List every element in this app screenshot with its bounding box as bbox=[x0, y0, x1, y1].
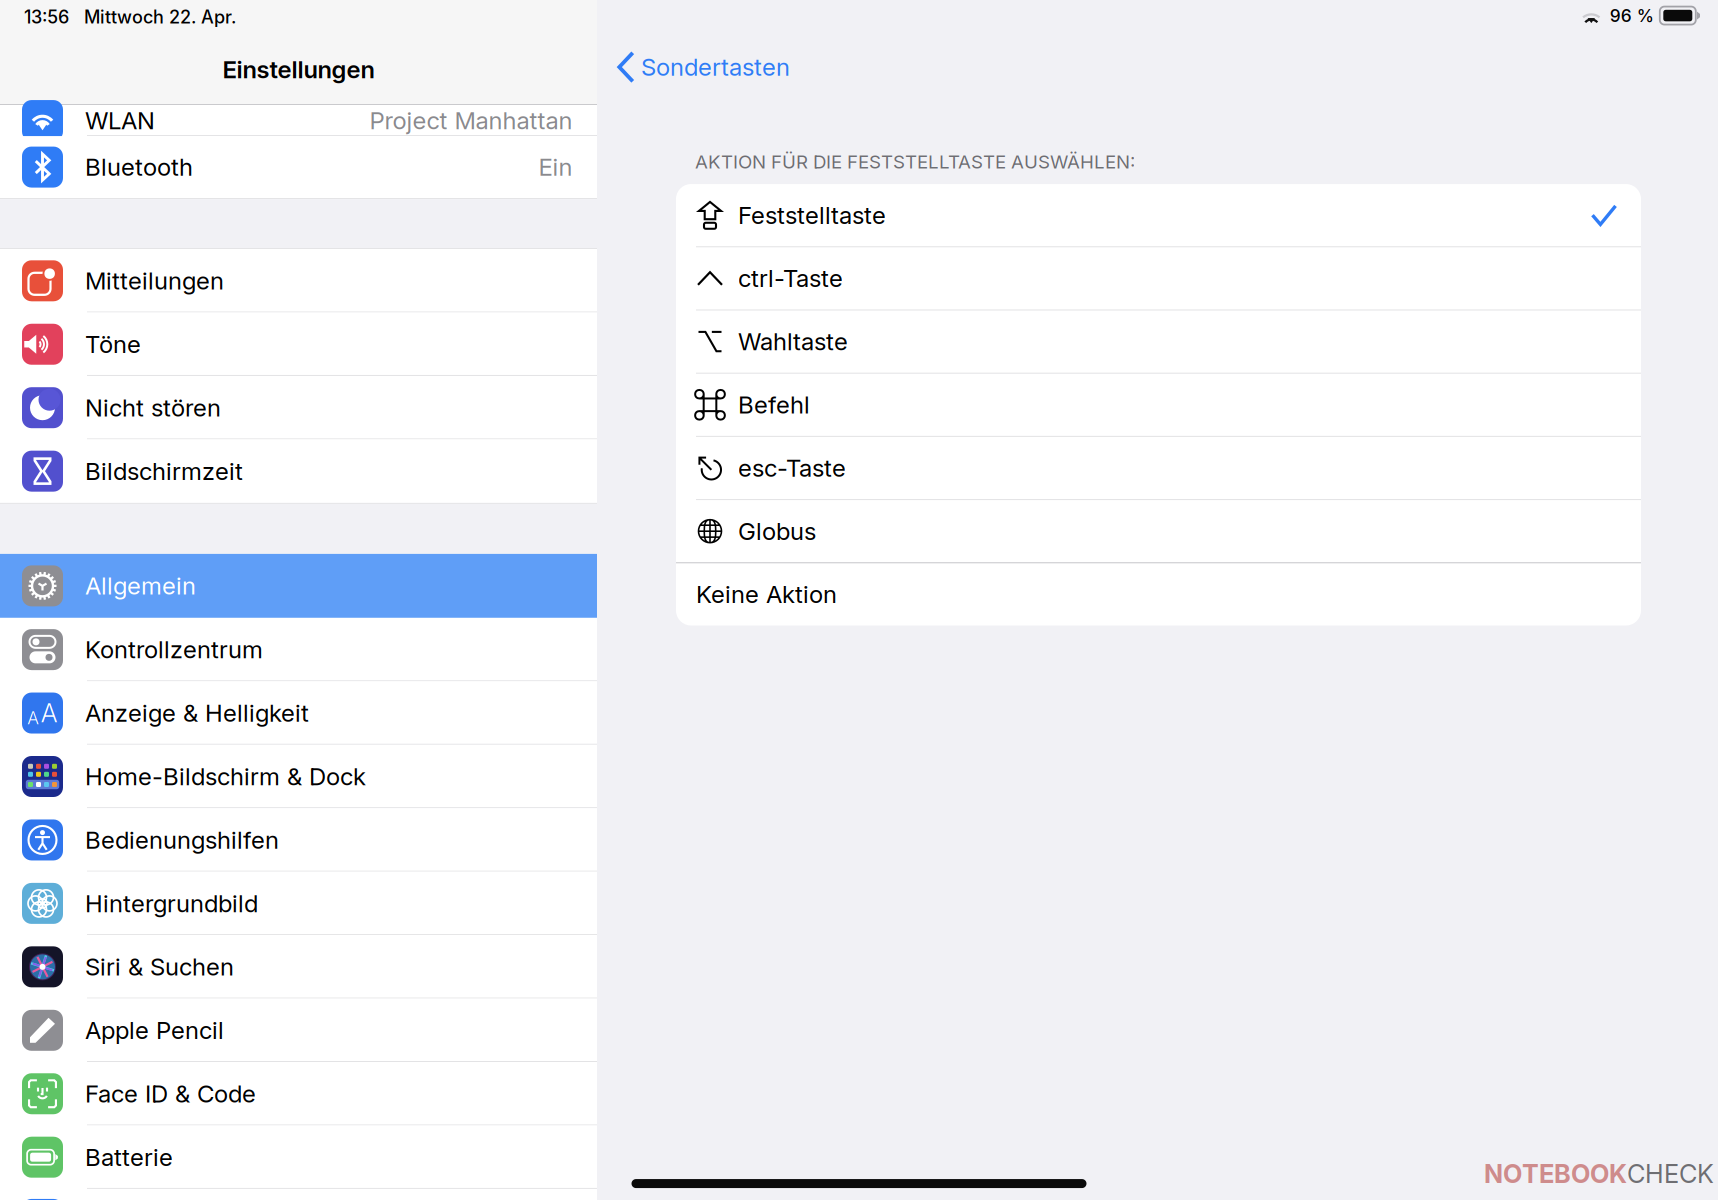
button[interactable]: Siri & Suchen bbox=[0, 935, 597, 999]
staticText: AKTION FÜR DIE FESTSTELLTASTE AUSWÄHLEN: bbox=[695, 150, 1135, 173]
staticText: Hintergrundbild bbox=[85, 889, 258, 918]
button[interactable]: Kontrollzentrum bbox=[0, 618, 597, 681]
staticText: Befehl bbox=[738, 390, 810, 419]
staticText: Ein bbox=[538, 153, 572, 182]
staticText: Kontrollzentrum bbox=[85, 635, 263, 664]
button[interactable]: Allgemein bbox=[0, 554, 597, 618]
staticText: Mittwoch 22. Apr. bbox=[84, 6, 236, 28]
staticText: Sondertasten bbox=[641, 53, 790, 82]
button[interactable]: Nicht stören bbox=[0, 376, 597, 439]
staticText: Bedienungshilfen bbox=[85, 825, 279, 854]
button[interactable]: WLAN bbox=[0, 105, 597, 136]
staticText: esc-Taste bbox=[738, 453, 846, 482]
button[interactable]: Hintergrundbild bbox=[0, 872, 597, 935]
staticText: NOTEBOOK bbox=[1484, 1158, 1627, 1189]
staticText: Siri & Suchen bbox=[85, 952, 234, 981]
staticText: Allgemein bbox=[85, 571, 196, 600]
staticText: Keine Aktion bbox=[696, 580, 837, 609]
staticText: WLAN bbox=[85, 106, 155, 135]
staticText: Batterie bbox=[85, 1143, 173, 1172]
staticText: 96 % bbox=[1610, 5, 1654, 26]
button[interactable]: Wahltaste bbox=[676, 310, 1641, 373]
button[interactable]: Bedienungshilfen bbox=[0, 808, 597, 872]
staticText: A bbox=[41, 698, 58, 728]
staticText: 13:56 bbox=[24, 6, 69, 28]
staticText: Face ID & Code bbox=[85, 1079, 256, 1108]
staticText: Globus bbox=[738, 517, 816, 546]
button[interactable]: Mitteilungen bbox=[0, 249, 597, 313]
staticText: A bbox=[27, 707, 39, 728]
button[interactable]: Apple Pencil bbox=[0, 999, 597, 1062]
button[interactable]: Batterie bbox=[0, 1125, 597, 1189]
staticText: Feststelltaste bbox=[738, 201, 886, 230]
staticText: Apple Pencil bbox=[85, 1016, 224, 1045]
staticText: Mitteilungen bbox=[85, 266, 224, 295]
staticText: Anzeige & Helligkeit bbox=[85, 698, 309, 727]
button[interactable]: Home-Bildschirm & Dock bbox=[0, 745, 597, 808]
button[interactable]: Bluetooth bbox=[0, 136, 597, 198]
button[interactable]: Befehl bbox=[676, 374, 1641, 436]
staticText: ctrl-Taste bbox=[738, 264, 843, 293]
button[interactable]: Globus bbox=[676, 500, 1641, 562]
button[interactable]: Keine Aktion bbox=[676, 563, 1641, 625]
staticText: Home-Bildschirm & Dock bbox=[85, 762, 366, 791]
button[interactable]: ctrl-Taste bbox=[676, 247, 1641, 309]
staticText: Project Manhattan bbox=[369, 106, 572, 135]
staticText: Wahltaste bbox=[738, 327, 848, 356]
staticText: Bluetooth bbox=[85, 153, 193, 182]
staticText: Nicht stören bbox=[85, 393, 221, 422]
button[interactable]: Bildschirmzeit bbox=[0, 439, 597, 503]
button[interactable]: Sondertasten bbox=[597, 32, 790, 102]
button[interactable] bbox=[0, 1189, 597, 1200]
button[interactable]: Feststelltaste bbox=[676, 184, 1641, 246]
button[interactable]: esc-Taste bbox=[676, 437, 1641, 499]
staticText: Bildschirmzeit bbox=[85, 457, 243, 486]
staticText: Einstellungen bbox=[222, 55, 374, 84]
staticText: Töne bbox=[85, 330, 141, 359]
button[interactable]: Face ID & Code bbox=[0, 1062, 597, 1125]
button[interactable]: A bbox=[0, 681, 597, 745]
staticText: CHECK bbox=[1627, 1158, 1714, 1189]
button[interactable]: Töne bbox=[0, 312, 597, 376]
